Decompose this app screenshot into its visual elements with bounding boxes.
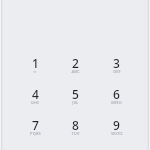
staticText: ABC xyxy=(71,69,80,74)
staticText: 3 xyxy=(113,55,120,71)
staticText: 4 xyxy=(32,86,39,102)
button[interactable]: 5 J K L xyxy=(55,86,96,117)
staticText: 6 xyxy=(113,86,120,102)
button[interactable]: 2 A B C xyxy=(55,55,96,86)
staticText: DEF xyxy=(113,69,121,74)
staticText: ∞ xyxy=(33,69,37,74)
staticText: 7 xyxy=(32,117,39,133)
staticText: WXYZ xyxy=(111,131,123,136)
staticText: MNO xyxy=(111,100,122,105)
staticText: JKL xyxy=(72,100,79,105)
button[interactable]: 1 voicemail xyxy=(15,55,55,86)
button[interactable]: 7 P Q R S xyxy=(15,117,55,148)
staticText: 8 xyxy=(72,117,79,133)
staticText: 1 xyxy=(32,55,39,71)
staticText: 2 xyxy=(72,55,79,71)
button[interactable]: 3 D E F xyxy=(96,55,137,86)
staticText: 5 xyxy=(72,86,79,102)
button[interactable]: 8 T U V xyxy=(55,117,96,148)
staticText: 9 xyxy=(113,117,120,133)
button[interactable]: 6 M N O xyxy=(96,86,137,117)
button[interactable]: 9 W X Y Z xyxy=(96,117,137,148)
staticText: GHI xyxy=(31,100,39,105)
staticText: PQRS xyxy=(30,131,41,136)
button[interactable]: 4 G H I xyxy=(15,86,55,117)
staticText: TUV xyxy=(71,131,80,136)
